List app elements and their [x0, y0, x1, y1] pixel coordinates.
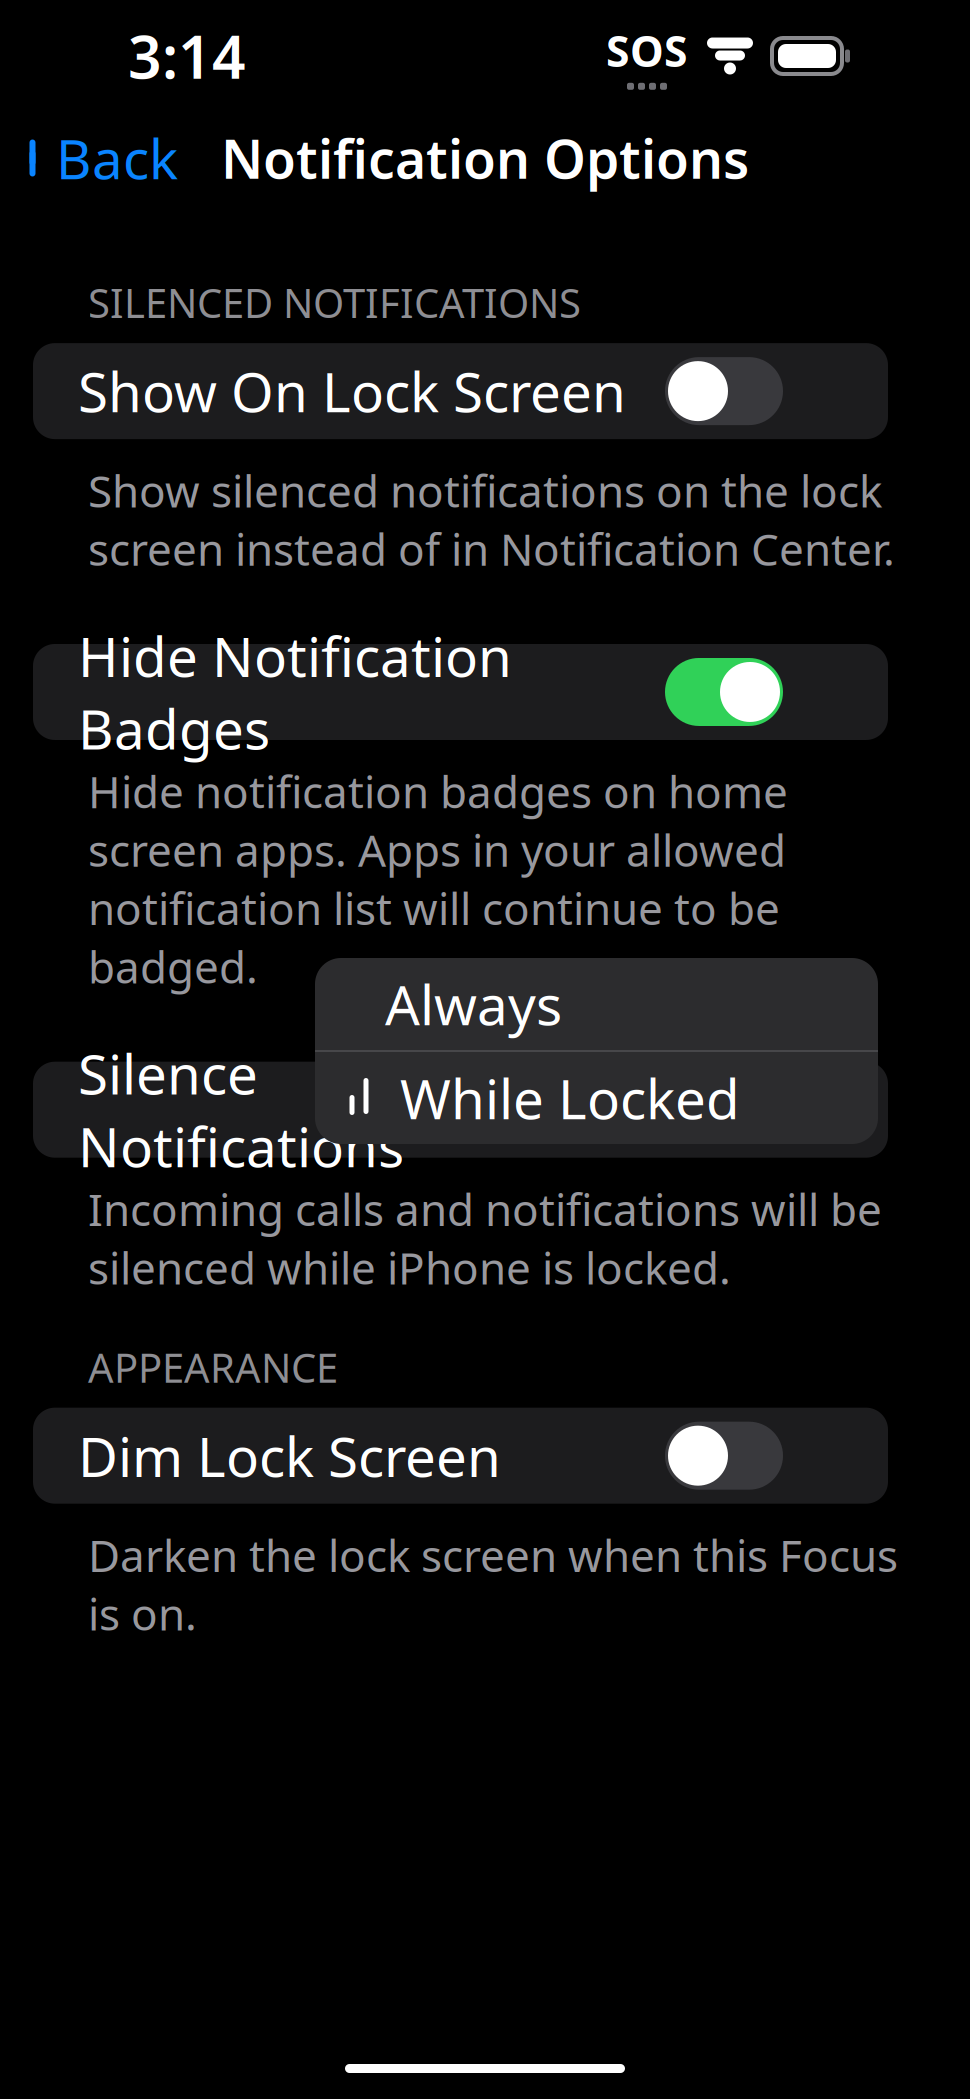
staticText: 3:14 — [128, 17, 246, 95]
staticText: Back — [56, 122, 178, 194]
staticText: Show On Lock Screen — [78, 355, 626, 427]
staticText: Show silenced notifications on the lock … — [88, 461, 895, 578]
staticText: SILENCED NOTIFICATIONS — [88, 276, 581, 329]
staticText: While Locked — [400, 1062, 740, 1134]
button[interactable]: Hide Notification Badges — [33, 644, 888, 740]
button[interactable]: Dim Lock Screen — [33, 1408, 888, 1504]
staticText: Darken the lock screen when this Focus i… — [88, 1526, 898, 1643]
staticText: Always — [385, 968, 562, 1040]
staticText: APPEARANCE — [88, 1341, 338, 1394]
button[interactable]: Back — [0, 108, 202, 208]
button[interactable]: Silence Notifications — [33, 1062, 888, 1158]
staticText: Dim Lock Screen — [78, 1419, 501, 1492]
button[interactable]: Show On Lock Screen — [33, 343, 888, 439]
staticText: Silence Notifications — [78, 1037, 404, 1182]
staticText: Hide Notification Badges — [78, 619, 512, 765]
button[interactable]: While Locked — [315, 1052, 878, 1144]
button[interactable]: Always — [315, 958, 878, 1050]
staticText: SOS — [606, 22, 688, 79]
staticText: Notification Options — [221, 123, 749, 193]
staticText: Hide notification badges on home screen … — [88, 762, 788, 996]
staticText: While Locked — [472, 1073, 812, 1146]
staticText: Incoming calls and notifications will be… — [88, 1180, 882, 1297]
